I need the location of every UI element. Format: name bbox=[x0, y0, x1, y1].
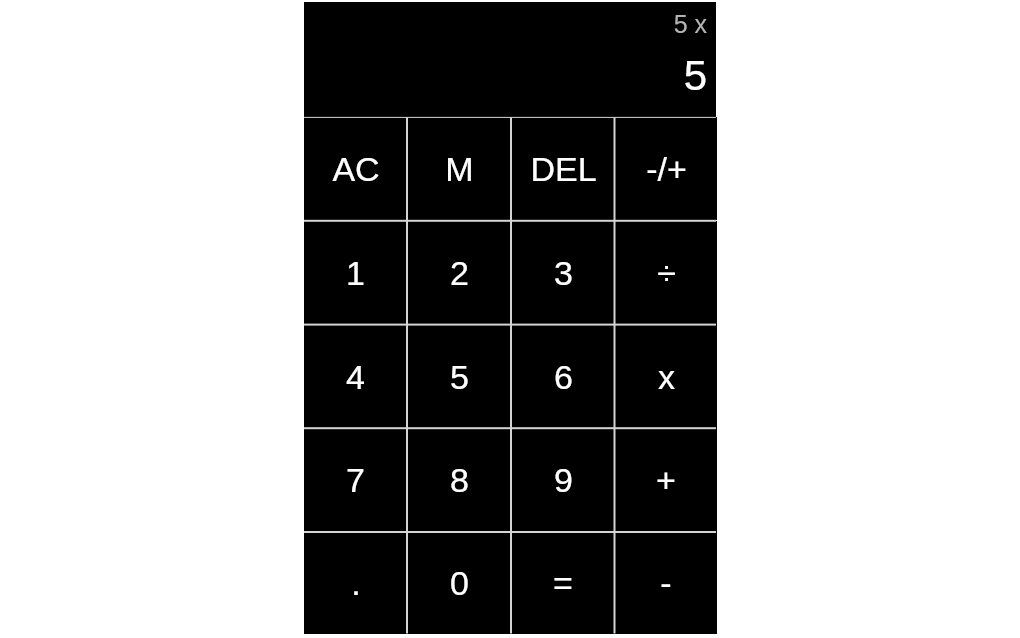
staticText: 9 bbox=[554, 461, 573, 499]
button[interactable]: + bbox=[615, 428, 717, 532]
button[interactable]: AC bbox=[304, 117, 407, 220]
staticText: 4 bbox=[346, 358, 365, 396]
button[interactable]: . bbox=[304, 532, 407, 634]
button[interactable]: DEL bbox=[511, 117, 615, 220]
staticText: = bbox=[553, 564, 573, 602]
staticText: 2 bbox=[450, 254, 469, 292]
staticText: 7 bbox=[346, 461, 365, 499]
button[interactable]: 3 bbox=[511, 221, 615, 325]
button[interactable]: M bbox=[407, 117, 511, 220]
staticText: 5 x bbox=[673, 10, 707, 38]
staticText: DEL bbox=[530, 150, 597, 188]
staticText: - bbox=[660, 564, 672, 602]
button[interactable]: 5 bbox=[407, 325, 511, 429]
staticText: 5 bbox=[450, 358, 469, 396]
staticText: AC bbox=[332, 150, 380, 188]
button[interactable]: = bbox=[511, 532, 615, 634]
staticText: 3 bbox=[554, 254, 573, 292]
staticText: 0 bbox=[450, 564, 469, 602]
button[interactable]: 2 bbox=[407, 221, 511, 325]
button[interactable]: 1 bbox=[304, 221, 407, 325]
button[interactable]: 4 bbox=[304, 325, 407, 429]
staticText: 8 bbox=[450, 461, 469, 499]
staticText: 6 bbox=[554, 358, 573, 396]
button[interactable]: - bbox=[615, 532, 717, 634]
button[interactable]: 8 bbox=[407, 428, 511, 532]
staticText: -/+ bbox=[646, 150, 687, 188]
staticText: M bbox=[445, 150, 474, 188]
button[interactable]: -/+ bbox=[615, 117, 717, 220]
button[interactable]: 9 bbox=[511, 428, 615, 532]
button[interactable]: 6 bbox=[511, 325, 615, 429]
button[interactable]: 0 bbox=[407, 532, 511, 634]
staticText: x bbox=[658, 358, 675, 396]
button[interactable]: ÷ bbox=[615, 221, 717, 325]
button[interactable]: 7 bbox=[304, 428, 407, 532]
staticText: 5 bbox=[683, 52, 707, 99]
staticText: . bbox=[351, 564, 361, 602]
staticText: + bbox=[656, 461, 676, 499]
staticText: 1 bbox=[346, 254, 365, 292]
staticText: ÷ bbox=[657, 254, 676, 292]
button[interactable]: x bbox=[615, 325, 717, 429]
